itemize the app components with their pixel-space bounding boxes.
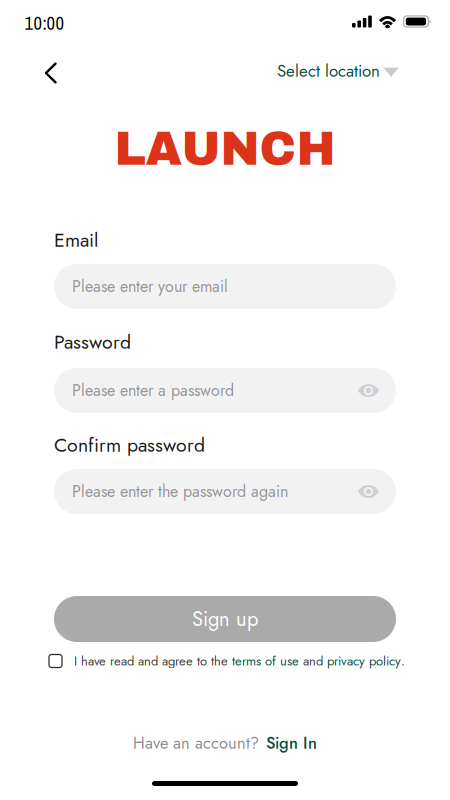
staticText: Please enter the password again	[72, 480, 288, 503]
staticText: privacy policy	[327, 652, 401, 670]
staticText: terms of use	[232, 652, 299, 670]
button[interactable]: terms of use	[220, 652, 287, 670]
staticText: .	[401, 652, 405, 670]
button[interactable]: Sign up	[54, 596, 396, 642]
button[interactable]: privacy policy	[315, 652, 389, 670]
staticText: I have read and agree to the	[74, 652, 232, 670]
staticText: Password	[54, 328, 131, 356]
staticText: Select location	[277, 59, 380, 83]
staticText: LAUNCH	[114, 123, 335, 175]
staticText: Sign In	[266, 731, 317, 755]
button[interactable]: Select location	[277, 60, 402, 82]
staticText: Please enter your email	[72, 275, 228, 298]
button[interactable]: Agree to terms of use and privacy policy	[49, 654, 62, 667]
staticText: and	[299, 652, 327, 670]
button[interactable]: Sign In	[266, 731, 317, 755]
staticText: Confirm password	[54, 431, 205, 459]
staticText: Email	[54, 226, 98, 254]
staticText: Sign up	[192, 604, 258, 633]
staticText: Please enter a password	[72, 379, 234, 402]
button[interactable]: Back	[36, 58, 66, 88]
staticText: Have an account?	[133, 731, 259, 755]
staticText: 10:00	[24, 10, 64, 36]
